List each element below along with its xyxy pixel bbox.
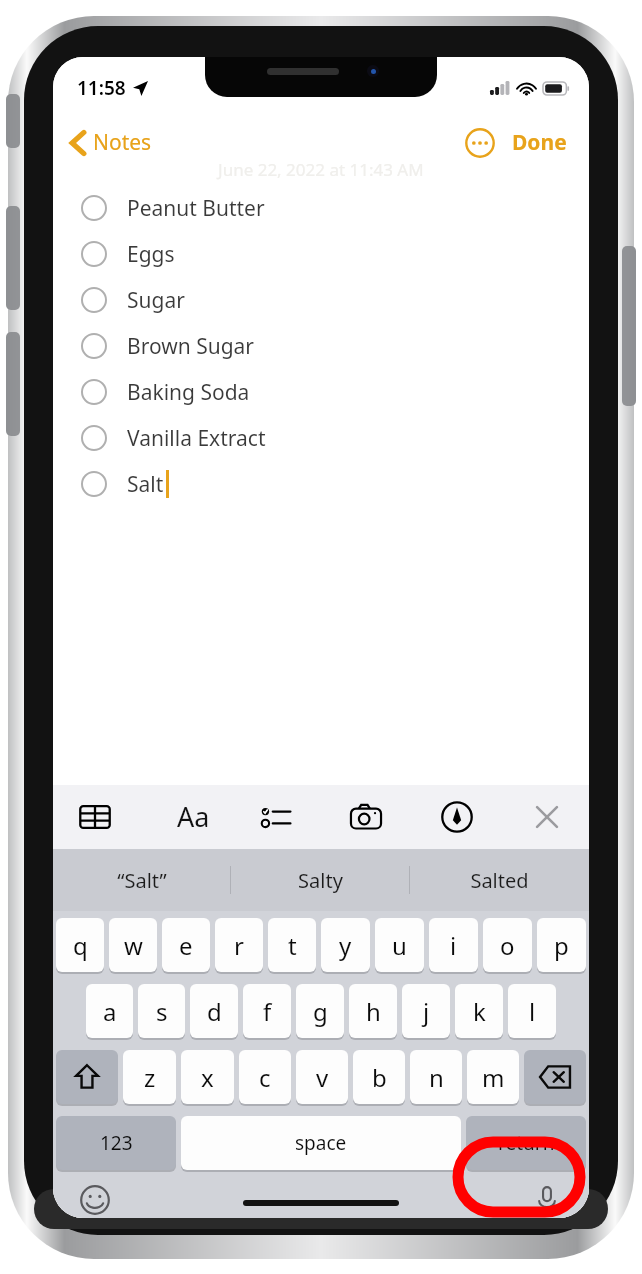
staticText: s	[156, 995, 168, 1028]
button[interactable]: Sugar	[53, 277, 589, 323]
staticText: u	[392, 929, 407, 962]
button[interactable]: Checklist	[248, 790, 304, 844]
button[interactable]: p	[537, 918, 586, 972]
staticText: Baking Soda	[127, 378, 250, 407]
staticText: Peanut Butter	[127, 194, 265, 223]
staticText: w	[124, 929, 143, 962]
staticText: p	[554, 929, 569, 962]
staticText: Notes	[93, 128, 152, 157]
staticText: i	[450, 929, 457, 962]
button[interactable]: u	[375, 918, 424, 972]
staticText: j	[423, 995, 430, 1028]
button[interactable]: Peanut Butter	[53, 185, 589, 231]
button[interactable]: Markup	[429, 790, 485, 844]
button[interactable]: Baking Soda	[53, 369, 589, 415]
staticText: o	[500, 929, 515, 962]
button[interactable]: k	[455, 984, 503, 1038]
button[interactable]: b	[353, 1050, 405, 1104]
staticText: Aa	[177, 798, 210, 835]
button[interactable]: Dictation	[525, 1182, 569, 1218]
button[interactable]: t	[268, 918, 316, 972]
staticText: Brown Sugar	[127, 332, 255, 361]
staticText: v	[316, 1061, 329, 1094]
button[interactable]: Emoji	[73, 1182, 117, 1218]
button[interactable]: space	[181, 1116, 461, 1170]
button[interactable]: Notes	[63, 122, 160, 163]
button[interactable]: s	[138, 984, 185, 1038]
staticText: f	[263, 995, 272, 1028]
staticText: r	[234, 929, 244, 962]
button[interactable]: i	[429, 918, 478, 972]
button[interactable]: m	[467, 1050, 519, 1104]
button[interactable]: Salt	[53, 461, 589, 507]
button[interactable]: h	[349, 984, 397, 1038]
staticText: n	[429, 1061, 444, 1094]
button[interactable]: r	[215, 918, 263, 972]
button[interactable]: Shift	[56, 1050, 118, 1104]
staticText: 123	[100, 1130, 133, 1156]
staticText: Done	[512, 128, 567, 157]
button[interactable]: Salty	[231, 849, 410, 911]
button[interactable]: c	[239, 1050, 291, 1104]
button[interactable]: Close keyboard	[519, 790, 575, 844]
staticText: z	[144, 1061, 156, 1094]
button[interactable]: Eggs	[53, 231, 589, 277]
button[interactable]: w	[109, 918, 157, 972]
staticText: m	[482, 1061, 505, 1094]
staticText: e	[179, 929, 193, 962]
staticText: k	[473, 995, 486, 1028]
button[interactable]: g	[296, 984, 344, 1038]
staticText: “Salt”	[117, 867, 167, 894]
staticText: y	[339, 929, 352, 962]
staticText: a	[103, 995, 117, 1028]
staticText: c	[259, 1061, 271, 1094]
button[interactable]: e	[162, 918, 210, 972]
staticText: Salted	[470, 867, 529, 894]
staticText: Eggs	[127, 240, 175, 269]
button[interactable]: 123	[56, 1116, 176, 1170]
button[interactable]: j	[402, 984, 450, 1038]
staticText: d	[207, 995, 222, 1028]
staticText: q	[73, 929, 88, 962]
button[interactable]: Brown Sugar	[53, 323, 589, 369]
button[interactable]: l	[508, 984, 556, 1038]
staticText: space	[295, 1130, 347, 1156]
button[interactable]: a	[86, 984, 133, 1038]
button[interactable]: d	[190, 984, 238, 1038]
button[interactable]: y	[321, 918, 370, 972]
button[interactable]: o	[483, 918, 532, 972]
button[interactable]: z	[123, 1050, 176, 1104]
button[interactable]: v	[296, 1050, 348, 1104]
staticText: h	[366, 995, 381, 1028]
button[interactable]: Table	[67, 790, 123, 844]
staticText: return	[498, 1130, 555, 1156]
button[interactable]: Backspace	[524, 1050, 586, 1104]
button[interactable]: Done	[504, 120, 575, 165]
button[interactable]: x	[181, 1050, 234, 1104]
button[interactable]: Salted	[410, 849, 589, 911]
staticText: Salty	[298, 867, 343, 894]
staticText: g	[313, 995, 328, 1028]
button[interactable]: Text format	[157, 790, 213, 844]
button[interactable]: Vanilla Extract	[53, 415, 589, 461]
staticText: Vanilla Extract	[127, 424, 266, 453]
staticText: b	[372, 1061, 387, 1094]
staticText: t	[288, 929, 297, 962]
button[interactable]: Camera	[338, 790, 394, 844]
staticText: x	[201, 1061, 214, 1094]
button[interactable]: n	[410, 1050, 462, 1104]
button[interactable]: f	[243, 984, 291, 1038]
button[interactable]: q	[56, 918, 104, 972]
staticText: June 22, 2022 at 11:43 AM	[218, 158, 424, 181]
staticText: l	[529, 995, 536, 1028]
button[interactable]: “Salt”	[53, 849, 231, 911]
staticText: Sugar	[127, 286, 185, 315]
button[interactable]: More options	[460, 123, 500, 163]
staticText: 11:58	[77, 75, 126, 101]
staticText: Salt	[127, 470, 164, 499]
button[interactable]: return	[466, 1116, 586, 1170]
